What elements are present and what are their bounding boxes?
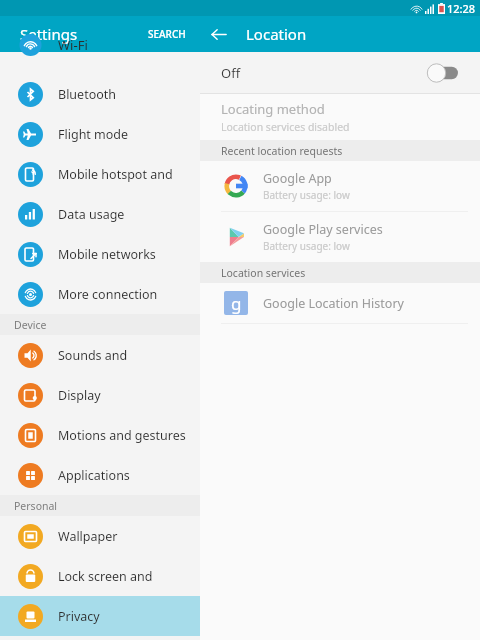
staticText: Lock screen and security (58, 568, 200, 585)
button[interactable]: Wallpaper (0, 516, 200, 556)
staticText: Google Play services (263, 221, 383, 238)
staticText: Flight mode (58, 126, 129, 143)
staticText: Location (246, 24, 307, 44)
button[interactable]: Privacy (0, 596, 200, 636)
staticText: Sounds and notifications (58, 347, 200, 364)
button[interactable]: Display (0, 375, 200, 415)
staticText: Locating method (221, 100, 325, 118)
button[interactable]: More connection settings (0, 274, 200, 314)
staticText: Google App (263, 170, 332, 187)
staticText: Location services (221, 266, 306, 280)
staticText: Location services disabled (221, 120, 350, 134)
button[interactable]: Motions and gestures (0, 415, 200, 455)
staticText: Wi-Fi (58, 36, 88, 54)
button[interactable]: Sounds and notifications (0, 335, 200, 375)
button[interactable]: Flight mode (0, 114, 200, 154)
staticText: Mobile networks (58, 246, 156, 263)
button[interactable]: Lock screen and security (0, 556, 200, 596)
button[interactable]: Locating method (200, 94, 480, 140)
button[interactable]: Google Play services (200, 212, 480, 262)
staticText: SEARCH (148, 27, 186, 41)
button[interactable]: g (200, 283, 480, 323)
staticText: Device (14, 318, 47, 332)
button[interactable]: Location toggle, off (428, 63, 462, 83)
staticText: g (231, 292, 242, 315)
staticText: Recent location requests (221, 144, 343, 158)
staticText: Wallpaper (58, 528, 118, 545)
button[interactable]: Applications (0, 455, 200, 495)
staticText: Personal (14, 499, 58, 513)
staticText: Off (221, 64, 241, 82)
staticText: Google Location History (263, 295, 404, 312)
staticText: Battery usage: low (263, 188, 350, 202)
staticText: Data usage (58, 206, 125, 223)
staticText: Applications (58, 467, 130, 484)
staticText: Privacy (58, 608, 100, 625)
staticText: Bluetooth (58, 86, 117, 103)
button[interactable]: Mobile hotspot and tether.. (0, 154, 200, 194)
button[interactable]: Google App (200, 161, 480, 211)
staticText: Motions and gestures (58, 427, 186, 444)
staticText: Mobile hotspot and tether.. (58, 166, 200, 183)
staticText: Battery usage: low (263, 239, 350, 253)
staticText: Display (58, 387, 101, 404)
button[interactable]: Mobile networks (0, 234, 200, 274)
staticText: More connection settings (58, 286, 200, 303)
button[interactable]: Bluetooth (0, 74, 200, 114)
button[interactable]: Data usage (0, 194, 200, 234)
staticText: 12:28 (447, 1, 476, 16)
button[interactable]: Wi-Fi (0, 52, 200, 74)
button[interactable]: SEARCH (134, 19, 200, 49)
button[interactable]: Back (200, 16, 236, 52)
staticText: Settings (20, 24, 78, 44)
button[interactable]: Off (200, 52, 480, 93)
